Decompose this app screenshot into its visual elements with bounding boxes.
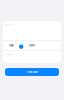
- staticText: Enter text: [5, 24, 14, 25]
- staticText: Translate: [26, 70, 37, 74]
- button[interactable]: Swap languages: [20, 41, 23, 50]
- staticText: Translation: [5, 53, 14, 55]
- staticText: Spanish: [29, 44, 35, 47]
- button[interactable]: Translate: [5, 68, 59, 76]
- button[interactable]: English: [3, 41, 20, 50]
- button[interactable]: Spanish: [23, 41, 41, 50]
- staticText: English: [9, 44, 14, 47]
